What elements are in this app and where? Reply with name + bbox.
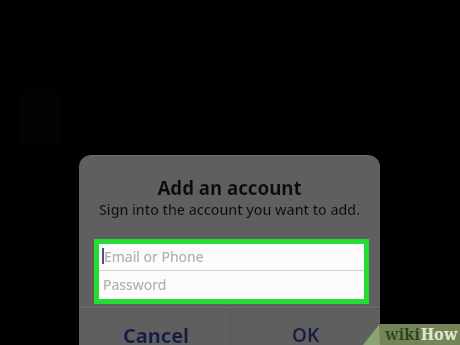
button[interactable]: Cancel: [79, 309, 230, 345]
button[interactable]: Password: [99, 271, 364, 297]
staticText: Sign into the account you want to add.: [79, 200, 380, 219]
staticText: Email or Phone: [104, 247, 204, 266]
staticText: OK: [292, 322, 320, 345]
button[interactable]: OK: [231, 309, 380, 345]
staticText: How: [421, 323, 458, 345]
staticText: Add an account: [79, 175, 380, 200]
button[interactable]: Email or Phone: [99, 244, 364, 270]
staticText: wiki: [385, 323, 421, 345]
staticText: Cancel: [123, 322, 190, 345]
staticText: Password: [103, 275, 167, 294]
